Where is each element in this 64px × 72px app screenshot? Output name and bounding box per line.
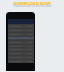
- button[interactable]: [8, 40, 34, 44]
- button[interactable]: [8, 24, 34, 28]
- button[interactable]: [8, 32, 34, 36]
- button[interactable]: [8, 55, 34, 59]
- button[interactable]: [8, 28, 34, 32]
- button[interactable]: [8, 59, 34, 63]
- staticText: DOWNLOAD NOW: [13, 1, 51, 5]
- button[interactable]: [8, 47, 34, 51]
- button[interactable]: [8, 51, 34, 55]
- staticText: Thank you rate us on Play Store: [13, 4, 52, 7]
- button[interactable]: [8, 44, 34, 48]
- button[interactable]: [8, 36, 34, 40]
